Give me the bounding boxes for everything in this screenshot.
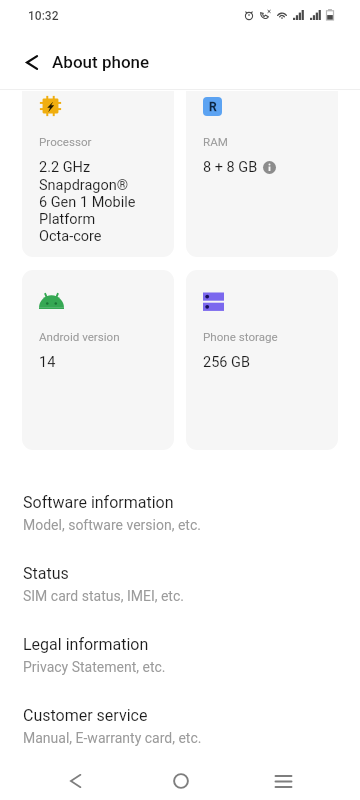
button[interactable]: R bbox=[186, 91, 338, 257]
staticText: 256 GB bbox=[203, 354, 250, 371]
button[interactable]: Back bbox=[16, 46, 48, 78]
button[interactable]: Recent apps bbox=[232, 760, 335, 800]
staticText: R bbox=[209, 100, 217, 114]
staticText: Legal information bbox=[23, 635, 149, 654]
staticText: Software information bbox=[23, 493, 174, 512]
button[interactable]: Android version bbox=[22, 270, 174, 450]
staticText: 10:32 bbox=[28, 9, 59, 23]
staticText: Status bbox=[23, 564, 69, 583]
button[interactable]: Status bbox=[0, 555, 360, 626]
button[interactable]: Processor bbox=[22, 91, 174, 257]
staticText: Model, software version, etc. bbox=[23, 517, 201, 533]
staticText: 2.2 GHz Snapdragon® 6 Gen 1 Mobile Platf… bbox=[39, 159, 136, 244]
button[interactable]: Back bbox=[21, 760, 129, 800]
button[interactable]: Home bbox=[129, 760, 232, 800]
staticText: Privacy Statement, etc. bbox=[23, 659, 166, 675]
staticText: Phone storage bbox=[203, 330, 278, 344]
button[interactable]: Customer service bbox=[0, 697, 360, 768]
staticText: SIM card status, IMEI, etc. bbox=[23, 588, 184, 604]
button[interactable]: Software information bbox=[0, 484, 360, 555]
staticText: Customer service bbox=[23, 706, 148, 725]
staticText: 8 + 8 GB bbox=[203, 159, 258, 176]
button[interactable]: Phone storage bbox=[186, 270, 338, 450]
button[interactable]: Legal information bbox=[0, 626, 360, 697]
staticText: Processor bbox=[39, 135, 92, 149]
staticText: About phone bbox=[52, 52, 150, 72]
staticText: RAM bbox=[203, 135, 228, 149]
staticText: Manual, E-warranty card, etc. bbox=[23, 730, 202, 746]
staticText: Android version bbox=[39, 330, 120, 344]
staticText: 14 bbox=[39, 354, 56, 371]
